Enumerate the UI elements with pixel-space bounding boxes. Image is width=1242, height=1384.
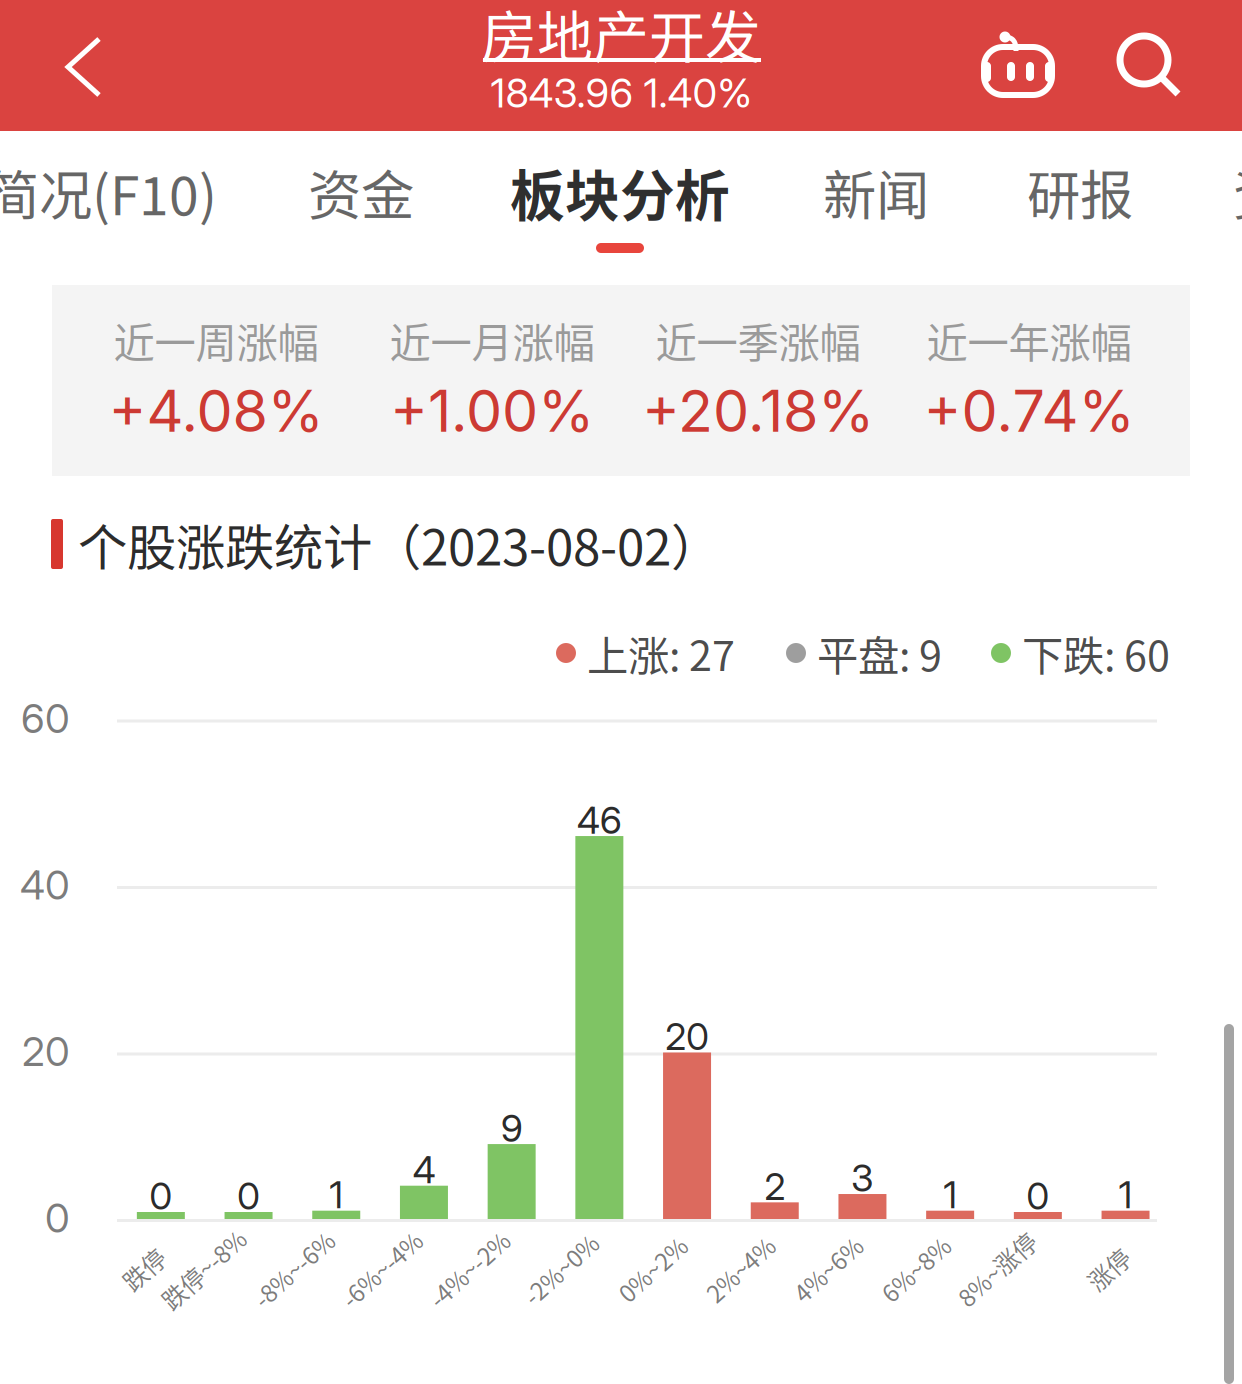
- staticText: +20.18%: [642, 376, 874, 446]
- staticText: 涨停: [1084, 1252, 1132, 1286]
- staticText: 个股涨跌统计（2023-08-02）: [78, 508, 720, 580]
- staticText: 板块分析: [510, 152, 730, 232]
- staticText: 跌停~-8%: [151, 1252, 255, 1286]
- staticText: 近一月涨幅: [389, 310, 594, 370]
- staticText: 6%~8%: [874, 1252, 957, 1286]
- button[interactable]: 资: [1233, 131, 1242, 253]
- button[interactable]: Search: [1086, 0, 1208, 131]
- button[interactable]: AI assistant: [962, 0, 1084, 131]
- staticText: 新闻: [823, 153, 929, 231]
- staticText: 平盘: 9: [817, 623, 942, 683]
- staticText: -2%~0%: [515, 1252, 606, 1286]
- staticText: 下跌: 60: [1022, 623, 1170, 683]
- staticText: 2%~4%: [699, 1252, 782, 1286]
- staticText: 3: [851, 1155, 874, 1201]
- staticText: 9: [501, 1105, 523, 1151]
- staticText: 40: [20, 861, 70, 909]
- staticText: 房地产开发: [481, 0, 761, 74]
- staticText: 20: [665, 1014, 709, 1059]
- staticText: +4.08%: [108, 376, 323, 446]
- staticText: 跌停: [120, 1252, 168, 1286]
- staticText: -8%~-6%: [244, 1252, 343, 1286]
- staticText: 0%~2%: [611, 1252, 694, 1286]
- button[interactable]: 板块分析: [505, 131, 735, 253]
- staticText: 0: [149, 1173, 172, 1219]
- staticText: -6%~-4%: [332, 1252, 431, 1286]
- staticText: 近一周涨幅: [113, 310, 318, 370]
- staticText: 上涨: 27: [587, 623, 735, 683]
- staticText: 46: [577, 797, 622, 843]
- staticText: 1: [943, 1172, 957, 1217]
- staticText: +1.00%: [390, 376, 594, 446]
- staticText: 资金: [308, 153, 414, 231]
- button[interactable]: 简况(F10): [0, 131, 212, 253]
- staticText: 0: [237, 1173, 260, 1219]
- staticText: 20: [22, 1027, 70, 1076]
- staticText: 2: [764, 1164, 785, 1209]
- staticText: 近一季涨幅: [655, 310, 860, 370]
- staticText: 60: [21, 694, 70, 743]
- staticText: 0: [1026, 1173, 1049, 1219]
- staticText: -4%~-2%: [420, 1252, 519, 1286]
- staticText: 1843.96 1.40%: [490, 69, 751, 117]
- staticText: 4: [412, 1147, 435, 1192]
- staticText: 4%~6%: [786, 1252, 869, 1286]
- staticText: 1: [329, 1172, 343, 1217]
- staticText: 研报: [1027, 153, 1133, 231]
- button[interactable]: Back: [0, 0, 158, 131]
- staticText: +0.74%: [923, 376, 1134, 446]
- staticText: 近一年涨幅: [926, 310, 1131, 370]
- staticText: 简况(F10): [0, 153, 217, 231]
- button[interactable]: 新闻: [796, 131, 956, 253]
- staticText: 1: [1118, 1172, 1132, 1217]
- button[interactable]: 资金: [281, 131, 441, 253]
- staticText: 8%~涨停: [949, 1252, 1045, 1286]
- staticText: 资: [1233, 153, 1242, 231]
- staticText: 0: [45, 1194, 70, 1242]
- button[interactable]: 研报: [1000, 131, 1160, 253]
